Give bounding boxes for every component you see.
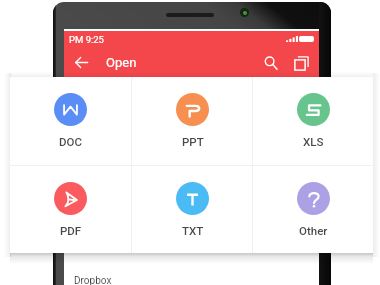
staticText: Other [299,224,328,237]
staticText: TXT [182,224,204,237]
button[interactable]: XLS [253,77,373,165]
staticText: DOC [59,135,82,148]
button[interactable]: PPT [132,77,252,165]
button[interactable]: TXT [132,166,252,253]
staticText: PM 9:25 [69,34,104,45]
button[interactable]: Back [69,50,93,74]
button[interactable]: Search [259,51,283,75]
staticText: Dropbox [74,275,112,285]
staticText: PPT [182,135,204,148]
button[interactable]: Other [253,166,373,253]
button[interactable]: PDF [10,166,131,253]
staticText: Open [106,55,137,70]
staticText: XLS [303,135,324,148]
button[interactable]: DOC [10,77,131,165]
button[interactable]: Recent tabs [289,51,313,75]
staticText: PDF [60,224,82,237]
